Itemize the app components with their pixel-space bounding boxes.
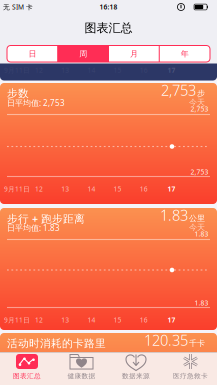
button[interactable]: 步数 — [0, 83, 217, 204]
staticText: 今天 — [189, 222, 205, 232]
staticText: 步行 + 跑步距离 — [7, 211, 85, 226]
staticText: 今天 — [189, 97, 205, 107]
staticText: 16:18 — [99, 3, 117, 11]
staticText: 2,753 — [190, 168, 208, 176]
staticText: 17 — [167, 66, 175, 75]
staticText: 9月11日 — [4, 316, 30, 324]
staticText: 日平均值: 1.83 — [7, 222, 60, 233]
staticText: 120.35 — [144, 330, 188, 350]
button[interactable]: 数据来源 — [109, 352, 163, 385]
staticText: 数据来源 — [122, 372, 150, 380]
staticText: 日 — [28, 49, 36, 59]
button[interactable]: 活动时消耗的卡路里 — [0, 333, 217, 385]
button[interactable]: 月 — [108, 45, 159, 62]
staticText: 17 — [167, 185, 175, 193]
staticText: 无 SIM 卡 — [3, 3, 33, 11]
staticText: 日平均值: 2,753 — [7, 97, 65, 108]
staticText: 公里 — [189, 213, 205, 223]
staticText: 医疗急救卡 — [173, 372, 208, 380]
staticText: 活动时消耗的卡路里 — [7, 337, 106, 350]
button[interactable]: 年 — [159, 45, 210, 62]
staticText: 图表汇总 — [13, 372, 41, 380]
staticText: 1.83 — [194, 230, 208, 238]
staticText: 步数 — [7, 87, 29, 100]
staticText: 12 — [35, 185, 43, 193]
button[interactable]: 睡眠分析图表 — [0, 50, 217, 80]
button[interactable]: 周 — [58, 45, 109, 62]
staticText: 周 — [79, 49, 87, 59]
button[interactable]: 健康数据 — [54, 352, 108, 385]
staticText: 14 — [87, 185, 95, 193]
staticText: 2,753 — [190, 105, 208, 113]
staticText: 14 — [87, 316, 95, 324]
staticText: 16 — [140, 316, 148, 324]
staticText: 16 — [140, 185, 148, 193]
staticText: 15 — [114, 316, 122, 324]
staticText: 13 — [61, 316, 69, 324]
staticText: 月 — [130, 49, 138, 59]
staticText: 图表汇总 — [84, 21, 132, 35]
staticText: 15 — [114, 185, 122, 193]
staticText: 9月11日 — [4, 185, 30, 193]
staticText: 步 — [197, 88, 205, 98]
staticText: 2,753 — [161, 80, 196, 100]
button[interactable]: 图表汇总 — [0, 352, 54, 385]
staticText: 1.83 — [160, 205, 188, 225]
staticText: 12 — [35, 316, 43, 324]
staticText: 13 — [61, 185, 69, 193]
staticText: 年 — [181, 49, 189, 59]
staticText: 千卡 — [189, 338, 205, 348]
staticText: 1.83 — [194, 299, 208, 307]
button[interactable]: 日 — [7, 45, 58, 62]
staticText: 17 — [167, 316, 175, 324]
staticText: 健康数据 — [67, 372, 95, 380]
button[interactable]: 医疗急救卡 — [163, 352, 217, 385]
button[interactable]: 步行 + 跑步距离 — [0, 208, 217, 330]
